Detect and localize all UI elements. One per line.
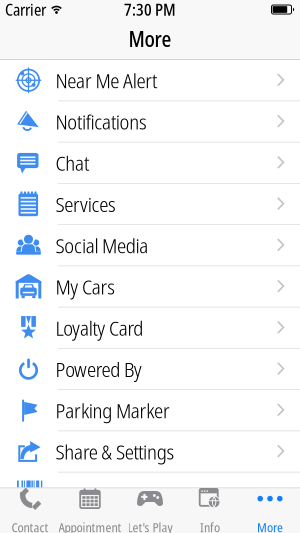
staticText: Near Me Alert	[55, 66, 157, 94]
staticText: Share & Settings	[55, 437, 174, 465]
staticText: Parking Marker	[55, 396, 170, 424]
staticText: Let's Play	[127, 519, 172, 533]
staticText: Services	[55, 190, 116, 218]
button[interactable]: Contact	[0, 483, 60, 533]
staticText: Contact	[11, 519, 48, 533]
staticText: More	[257, 519, 283, 533]
staticText: Appointment	[58, 519, 121, 533]
staticText: Chat	[55, 149, 89, 177]
button[interactable]: Appointment	[60, 483, 120, 533]
staticText: Info	[200, 519, 220, 533]
button[interactable]: Near Me Alert	[0, 60, 300, 101]
staticText: My Cars	[55, 272, 115, 300]
button[interactable]: Chat	[0, 142, 300, 184]
button[interactable]: Let's Play	[120, 483, 180, 533]
staticText: More	[128, 25, 171, 53]
staticText: Loyalty Card	[55, 314, 143, 342]
button[interactable]: Services	[0, 184, 300, 225]
staticText: Carrier	[5, 0, 46, 20]
button[interactable]: Parking Marker	[0, 390, 300, 431]
button[interactable]: Loyalty Card	[0, 307, 300, 349]
button[interactable]: Scan	[0, 480, 300, 487]
staticText: 7:30 PM	[124, 0, 176, 20]
button[interactable]: More	[240, 483, 300, 533]
button[interactable]: Notifications	[0, 101, 300, 142]
staticText: Social Media	[55, 231, 148, 259]
button[interactable]: Social Media	[0, 225, 300, 266]
button[interactable]: My Cars	[0, 266, 300, 307]
button[interactable]: Powered By	[0, 349, 300, 390]
staticText: Notifications	[55, 107, 147, 135]
staticText: Powered By	[55, 355, 142, 383]
button[interactable]: Info	[180, 483, 240, 533]
button[interactable]: Share & Settings	[0, 431, 300, 472]
